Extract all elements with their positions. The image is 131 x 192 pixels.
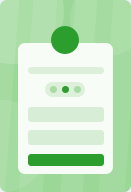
button[interactable]: Continue: [28, 154, 104, 166]
